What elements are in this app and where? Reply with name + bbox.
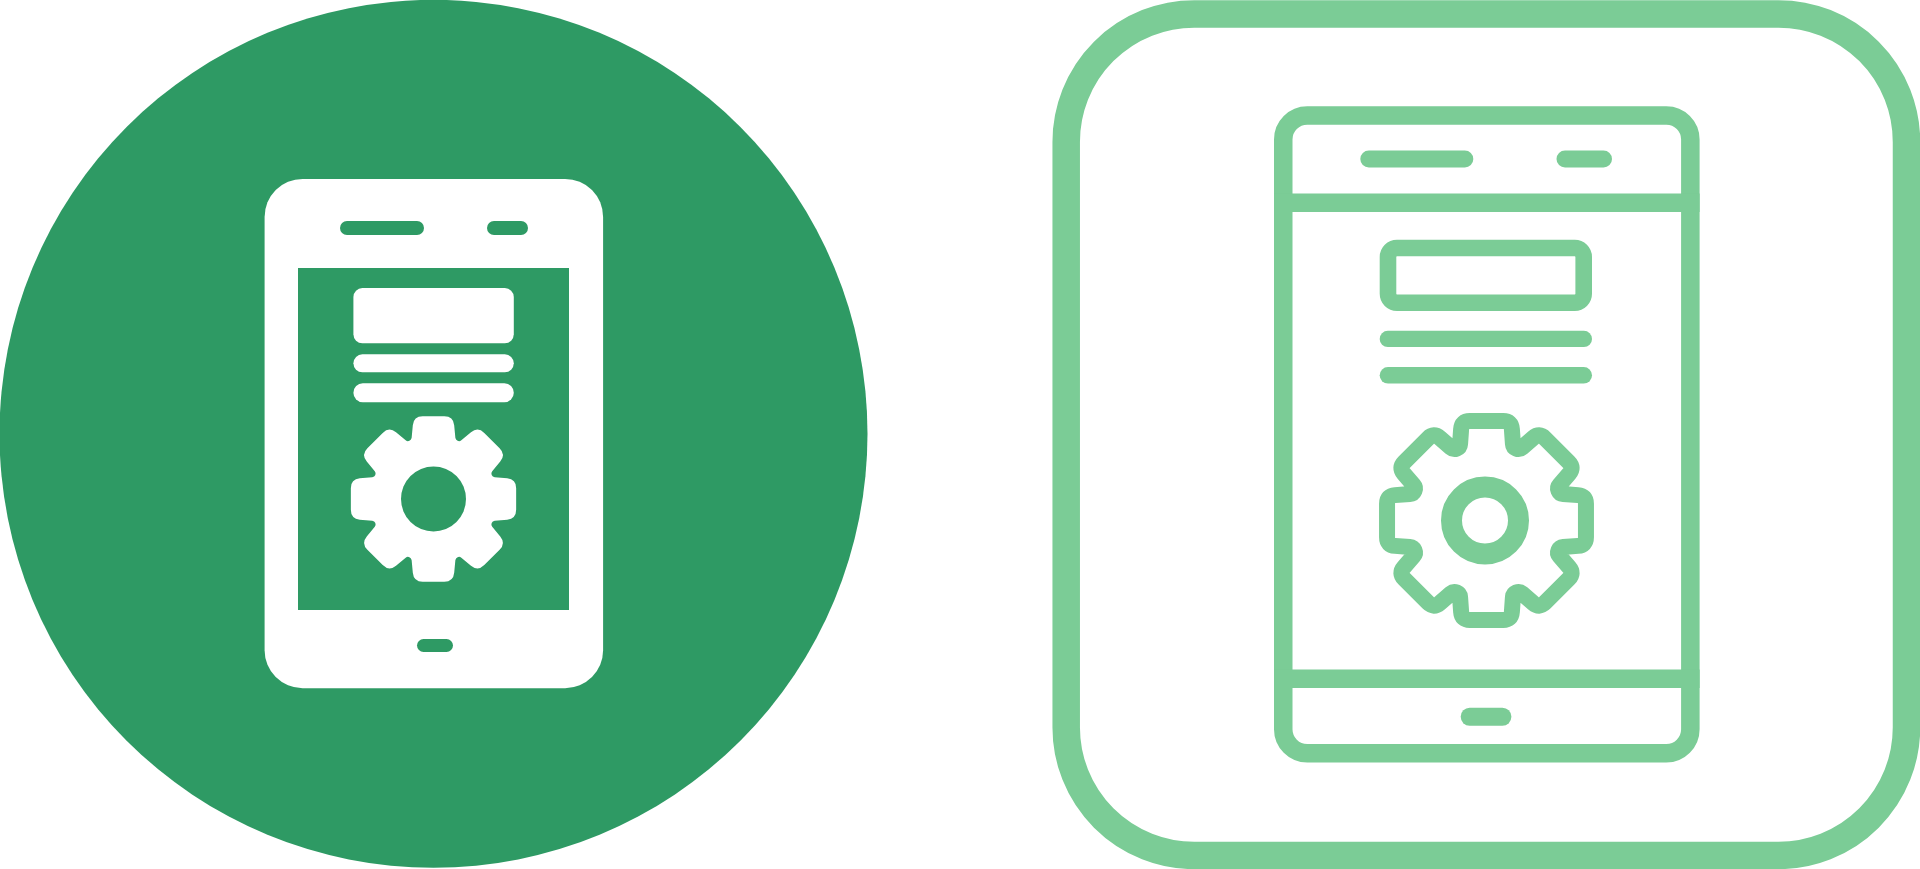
button[interactable]: Mobile settings, filled icon [0, 0, 900, 869]
button[interactable]: Mobile settings, outline icon [900, 0, 1920, 869]
